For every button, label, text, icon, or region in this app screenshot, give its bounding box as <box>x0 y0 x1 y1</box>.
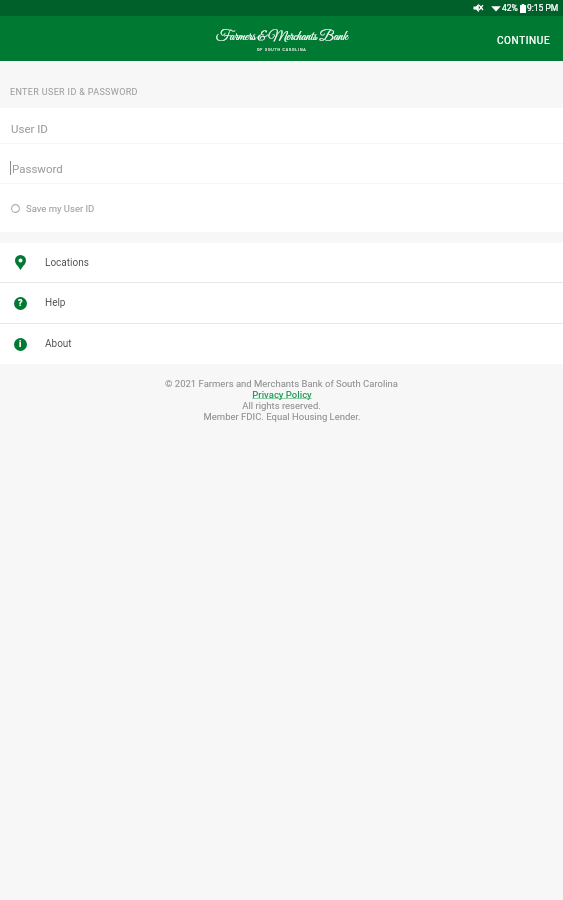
staticText: Save my User ID <box>26 203 95 214</box>
staticText: i <box>19 339 22 350</box>
button[interactable]: Privacy Policy <box>252 389 312 400</box>
button[interactable]: Save my User ID <box>0 184 563 232</box>
staticText: User ID <box>11 122 48 135</box>
staticText: Member FDIC. Equal Housing Lender. <box>203 411 361 422</box>
staticText: About <box>45 338 72 350</box>
staticText: Privacy Policy <box>252 389 312 400</box>
other: Locations <box>15 255 26 270</box>
button[interactable]: User ID <box>0 108 563 143</box>
button[interactable]: About <box>0 324 563 364</box>
staticText: Locations <box>45 257 89 269</box>
other: Help <box>14 297 27 310</box>
button[interactable]: Help <box>0 283 563 323</box>
staticText: Password <box>12 162 63 175</box>
button[interactable]: Locations <box>0 243 563 282</box>
button[interactable]: CONTINUE <box>485 26 563 56</box>
staticText: ENTER USER ID & PASSWORD <box>10 87 138 98</box>
staticText: 9:15 PM <box>527 3 559 13</box>
button[interactable]: Password <box>0 144 563 183</box>
staticText: All rights reserved. <box>242 400 321 411</box>
staticText: CONTINUE <box>497 35 551 47</box>
staticText: ? <box>18 298 23 309</box>
other: About <box>14 338 27 351</box>
staticText: OF SOUTH CAROLINA <box>257 48 307 52</box>
staticText: Farmers & Merchants Bank <box>216 29 348 46</box>
staticText: Help <box>45 297 66 309</box>
staticText: © 2021 Farmers and Merchants Bank of Sou… <box>165 378 398 389</box>
staticText: 42% <box>502 3 518 13</box>
